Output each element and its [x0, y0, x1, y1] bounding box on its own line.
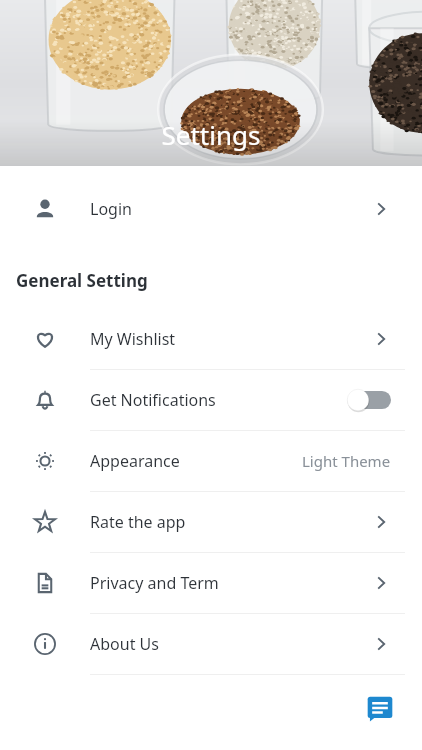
other: Open	[371, 199, 391, 219]
staticText: Appearance	[90, 450, 302, 472]
button[interactable]: My Wishlist	[0, 309, 422, 369]
other: Open	[371, 634, 391, 654]
other: Open	[371, 512, 391, 532]
other: Open	[371, 573, 391, 593]
button[interactable]: Rate the app	[0, 492, 422, 552]
button[interactable]: Appearance	[0, 431, 422, 491]
staticText: About Us	[90, 633, 371, 655]
button[interactable]: Get Notifications toggle	[347, 389, 391, 411]
staticText: My Wishlist	[90, 328, 371, 350]
staticText: Privacy and Term	[90, 572, 371, 594]
button[interactable]: Privacy and Term	[0, 553, 422, 613]
button[interactable]: Login	[0, 179, 422, 239]
staticText: Get Notifications	[90, 389, 347, 411]
staticText: Settings	[0, 117, 422, 152]
button[interactable]: Get Notifications	[0, 370, 422, 430]
button[interactable]: About Us	[0, 614, 422, 674]
button[interactable]: Chat support	[354, 682, 406, 734]
staticText: Rate the app	[90, 511, 371, 533]
other: Open	[371, 329, 391, 349]
staticText: General Setting	[16, 269, 148, 292]
staticText: Login	[90, 198, 371, 220]
staticText: Light Theme	[302, 451, 391, 471]
